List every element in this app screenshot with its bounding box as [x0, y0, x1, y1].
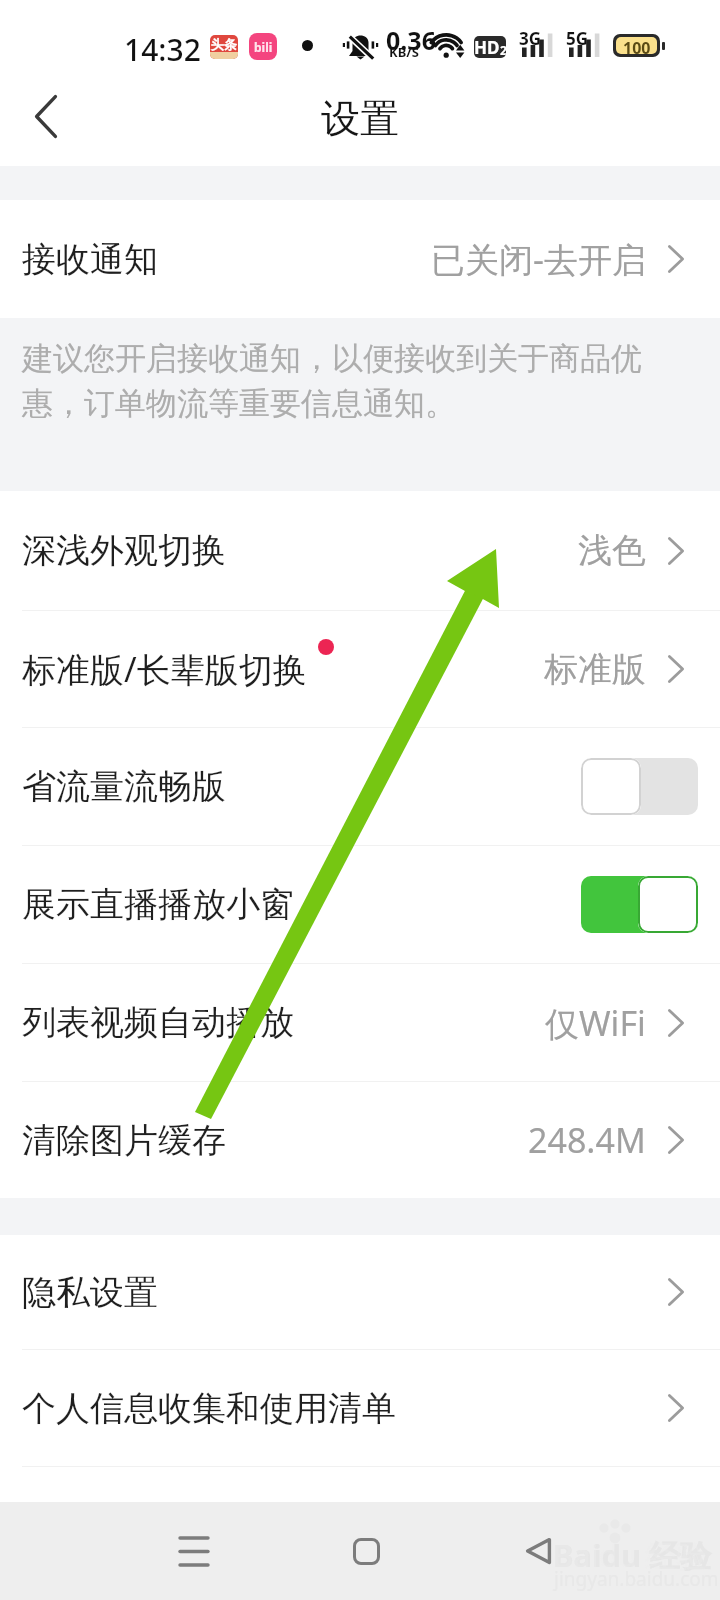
staticText: 展示直播播放小窗: [22, 883, 294, 926]
staticText: 100: [623, 37, 651, 54]
staticText: Baidu 经验: [553, 1534, 712, 1576]
button[interactable]: Recent apps: [144, 1502, 244, 1600]
button[interactable]: 个人信息收集和使用清单: [0, 1350, 720, 1466]
staticText: 2: [500, 42, 506, 58]
staticText: 设置: [321, 94, 399, 143]
staticText: 已关闭-去开启: [431, 236, 646, 282]
button[interactable]: 展示直播播放小窗: [0, 846, 720, 963]
staticText: KB/S: [389, 43, 419, 61]
staticText: 深浅外观切换: [22, 529, 226, 572]
staticText: 14:32: [124, 29, 201, 70]
staticText: 仅WiFi: [545, 1000, 646, 1046]
button[interactable]: 深浅外观切换: [0, 491, 720, 610]
button[interactable]: 隐私设置: [0, 1235, 720, 1349]
button[interactable]: Back: [488, 1502, 588, 1600]
staticText: 隐私设置: [22, 1271, 158, 1314]
staticText: 列表视频自动播放: [22, 1001, 294, 1044]
staticText: 建议您开启接收通知，以便接收到关于商品优 惠，订单物流等重要信息通知。: [22, 339, 642, 423]
staticText: 3G: [519, 27, 542, 50]
staticText: Baidu 经验: [553, 1534, 707, 1576]
staticText: bili: [254, 39, 273, 55]
staticText: 248.4M: [528, 1117, 646, 1163]
button[interactable]: On: [581, 876, 698, 933]
staticText: 头条: [211, 36, 237, 52]
button[interactable]: 清除图片缓存: [0, 1082, 720, 1198]
staticText: 省流量流畅版: [22, 765, 226, 808]
button[interactable]: 省流量流畅版: [0, 728, 720, 845]
button[interactable]: Off: [581, 758, 698, 815]
button[interactable]: Home: [316, 1502, 416, 1600]
button[interactable]: 列表视频自动播放: [0, 964, 720, 1081]
staticText: 清除图片缓存: [22, 1119, 226, 1162]
staticText: 5G: [566, 27, 589, 50]
staticText: 标准版/长辈版切换: [22, 646, 307, 692]
staticText: 标准版: [544, 648, 646, 691]
button[interactable]: 接收通知: [0, 200, 720, 318]
button[interactable]: Back: [0, 71, 92, 162]
staticText: HD: [474, 36, 500, 58]
staticText: 浅色: [578, 529, 646, 572]
button[interactable]: 标准版/长辈版切换: [0, 611, 720, 727]
staticText: 接收通知: [22, 238, 158, 281]
staticText: 0.36: [386, 23, 436, 57]
staticText: 个人信息收集和使用清单: [22, 1387, 396, 1430]
